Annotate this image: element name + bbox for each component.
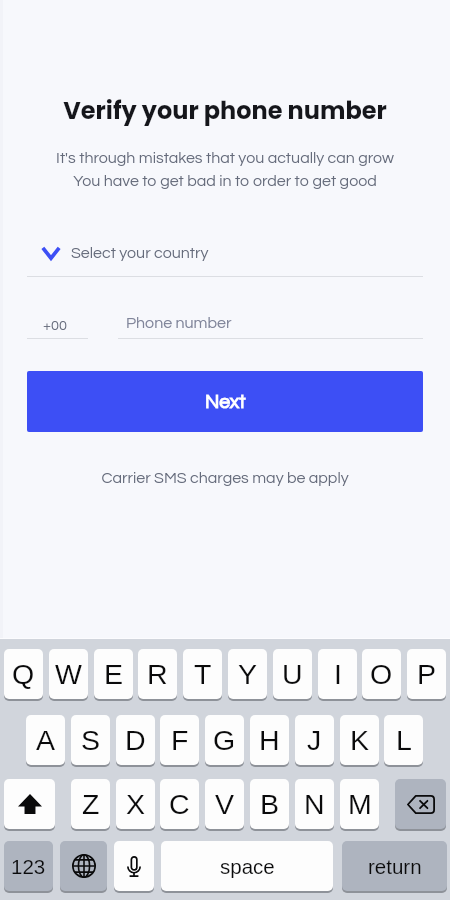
staticText: D [125, 724, 146, 756]
staticText: K [350, 724, 370, 756]
staticText: Carrier SMS charges may be apply [0, 470, 450, 486]
staticText: J [307, 724, 322, 756]
button[interactable]: J [295, 715, 334, 765]
staticText: M [348, 788, 372, 820]
staticText: E [104, 658, 124, 690]
button[interactable]: B [250, 779, 289, 829]
button[interactable]: H [250, 715, 289, 765]
button[interactable]: T [183, 649, 222, 699]
staticText: O [370, 658, 393, 690]
staticText: V [215, 788, 235, 820]
button[interactable]: Y [228, 649, 267, 699]
staticText: Next [205, 392, 246, 412]
button[interactable]: S [71, 715, 110, 765]
button[interactable]: N [295, 779, 334, 829]
button[interactable]: Select your country [27, 235, 423, 271]
button[interactable]: A [26, 715, 65, 765]
button[interactable]: D [116, 715, 155, 765]
button[interactable]: F [160, 715, 199, 765]
staticText: W [55, 658, 82, 690]
staticText: Q [12, 658, 35, 690]
button[interactable]: Phone number [118, 309, 423, 337]
staticText: N [304, 788, 325, 820]
staticText: Z [82, 788, 100, 820]
button[interactable]: I [318, 649, 357, 699]
staticText: space [220, 855, 275, 878]
staticText: L [396, 724, 412, 756]
staticText: I [334, 658, 342, 690]
button[interactable]: L [384, 715, 423, 765]
button[interactable]: O [362, 649, 401, 699]
staticText: Verify your phone number [0, 94, 450, 128]
button[interactable]: C [160, 779, 199, 829]
staticText: Select your country [71, 245, 209, 261]
button[interactable]: Z [71, 779, 110, 829]
staticText: Y [238, 658, 258, 690]
staticText: You have to get bad in to order to get g… [0, 173, 450, 189]
button[interactable]: G [205, 715, 244, 765]
button[interactable]: R [138, 649, 177, 699]
button[interactable]: Next keyboard [60, 841, 107, 891]
staticText: G [213, 724, 236, 756]
staticText: U [282, 658, 303, 690]
button[interactable]: P [407, 649, 446, 699]
staticText: P [417, 658, 437, 690]
button[interactable]: 123 [4, 841, 53, 891]
staticText: C [169, 788, 190, 820]
staticText: B [260, 788, 280, 820]
button[interactable]: U [273, 649, 312, 699]
button[interactable]: space [161, 841, 333, 891]
staticText: return [368, 855, 422, 878]
staticText: S [81, 724, 101, 756]
button[interactable]: K [340, 715, 379, 765]
staticText: T [194, 658, 212, 690]
staticText: It's through mistakes that you actually … [0, 150, 450, 166]
button[interactable]: M [340, 779, 379, 829]
button[interactable]: E [94, 649, 133, 699]
button[interactable]: Next [27, 371, 423, 432]
staticText: F [171, 724, 189, 756]
button[interactable]: Backspace [395, 779, 446, 829]
staticText: Phone number [126, 315, 232, 331]
staticText: +00 [43, 318, 67, 333]
button[interactable]: X [116, 779, 155, 829]
button[interactable]: Q [4, 649, 43, 699]
button[interactable]: +00 [27, 311, 88, 339]
button[interactable]: V [205, 779, 244, 829]
staticText: H [259, 724, 280, 756]
button[interactable]: Shift [4, 779, 55, 829]
button[interactable]: W [49, 649, 88, 699]
staticText: R [147, 658, 168, 690]
staticText: X [126, 788, 146, 820]
staticText: A [36, 724, 56, 756]
button[interactable]: return [342, 841, 447, 891]
button[interactable]: Dictation [114, 841, 154, 891]
staticText: 123 [11, 855, 46, 878]
